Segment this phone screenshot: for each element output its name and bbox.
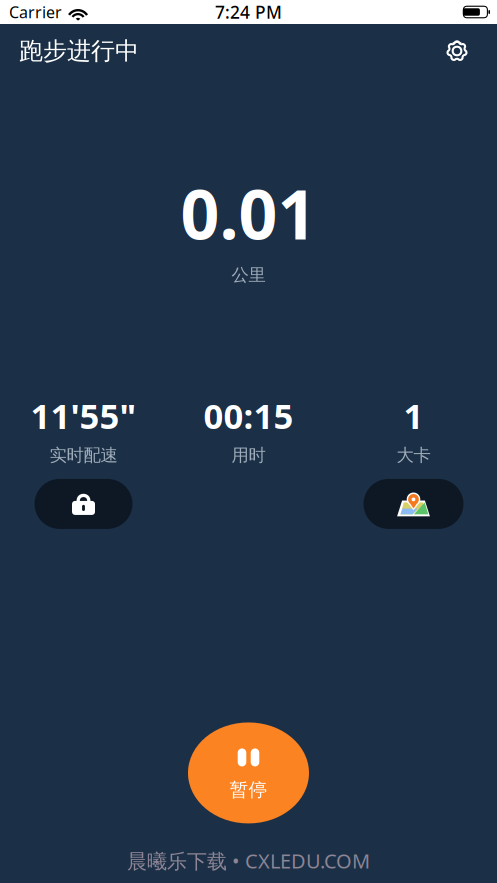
staticText: 00:15 [203,393,293,439]
staticText: 跑步进行中 [19,36,139,66]
staticText: 晨曦乐下载 • CXLEDU.COM [127,847,370,874]
staticText: 大卡 [396,445,430,466]
staticText: 11'55" [30,393,136,439]
staticText: 用时 [231,445,265,466]
staticText: 0.01 [180,168,316,258]
button[interactable]: 设置 [437,31,477,71]
staticText: 1 [403,393,423,439]
staticText: 7:24 PM [215,0,282,23]
button[interactable]: 暂停 [188,722,309,823]
staticText: Carrier [9,1,62,23]
staticText: 公里 [231,264,265,286]
staticText: 暂停 [229,778,267,801]
button[interactable]: 锁定 [34,479,132,529]
button[interactable]: 地图 [363,479,463,529]
staticText: 实时配速 [49,445,117,466]
